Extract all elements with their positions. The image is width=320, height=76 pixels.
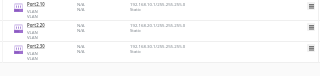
staticText: Static <box>130 6 142 12</box>
button[interactable]: Menu <box>307 2 315 10</box>
staticText: Static <box>130 48 142 54</box>
staticText: 192.168.10.1/255.255.255.0 <box>130 1 186 7</box>
staticText: N/A <box>77 1 85 7</box>
button[interactable]: Port2.30 <box>0 42 320 62</box>
staticText: N/A <box>77 48 85 54</box>
button[interactable]: Port2.20 <box>0 21 320 41</box>
staticText: N/A <box>77 27 85 33</box>
staticText: VLAN <box>27 29 38 35</box>
staticText: N/A <box>77 6 85 12</box>
staticText: N/A <box>77 43 85 49</box>
button[interactable]: Menu <box>307 44 315 52</box>
staticText: 192.168.30.1/255.255.255.0 <box>130 43 186 49</box>
staticText: Port2.30 <box>27 43 45 49</box>
staticText: Port2.10 <box>27 1 45 7</box>
staticText: VLAN <box>27 8 38 14</box>
staticText: VLAN <box>27 50 38 56</box>
staticText: Port2.20 <box>27 22 45 28</box>
staticText: VLAN <box>27 34 38 40</box>
staticText: Static <box>130 27 142 33</box>
staticText: N/A <box>77 22 85 28</box>
staticText: 192.168.20.1/255.255.255.0 <box>130 22 186 28</box>
button[interactable]: Menu <box>307 23 315 31</box>
button[interactable]: Port2.10 <box>0 0 320 20</box>
staticText: VLAN <box>27 55 38 61</box>
staticText: VLAN <box>27 13 38 19</box>
